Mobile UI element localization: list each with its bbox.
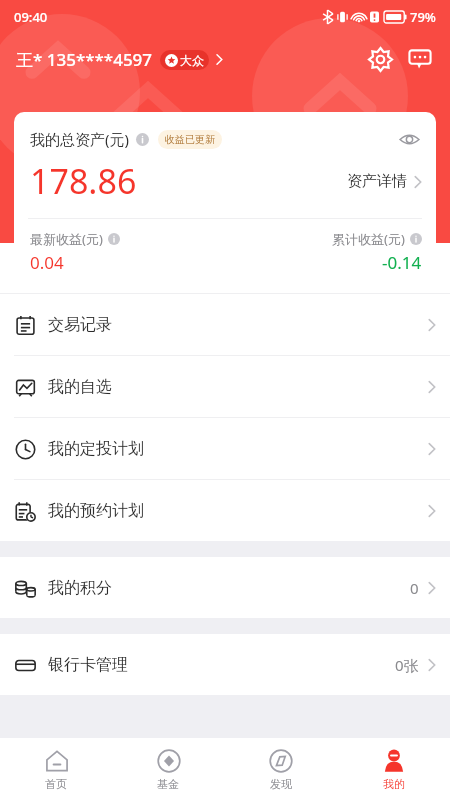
staticText: 收益已更新 (165, 133, 215, 146)
staticText: 交易记录 (48, 315, 112, 335)
button[interactable]: Settings (362, 42, 398, 76)
staticText: 基金 (157, 777, 179, 791)
staticText: 我的 (383, 777, 405, 791)
staticText: 首页 (45, 777, 67, 791)
button[interactable]: 王* 135****4597 (16, 48, 223, 71)
staticText: 我的总资产(元) (30, 129, 130, 149)
staticText: 王* 135****4597 (16, 48, 153, 71)
button[interactable]: 交易记录 (0, 294, 450, 355)
button[interactable]: Messages (402, 42, 438, 76)
staticText: 我的预约计划 (48, 501, 144, 521)
staticText: 最新收益(元) (30, 230, 103, 248)
staticText: 资产详情 (347, 172, 407, 191)
staticText: 我的积分 (48, 578, 112, 598)
staticText: 发现 (270, 777, 292, 791)
staticText: 0张 (395, 655, 419, 675)
button[interactable]: 我的自选 (0, 356, 450, 417)
button[interactable]: 我的积分 (0, 557, 450, 618)
staticText: -0.14 (382, 251, 422, 274)
staticText: 累计收益(元) (332, 230, 405, 248)
staticText: 大众 (180, 53, 204, 68)
button[interactable]: 基金 (112, 738, 224, 800)
staticText: 我的自选 (48, 377, 112, 397)
button[interactable]: 我的定投计划 (0, 418, 450, 479)
button[interactable]: Toggle visibility (396, 126, 422, 152)
staticText: 09:40 (14, 8, 48, 26)
button[interactable]: 您有确认中交易5笔正在进行中 (0, 243, 450, 293)
staticText: 79% (410, 8, 436, 26)
button[interactable]: 银行卡管理 (0, 634, 450, 695)
button[interactable]: 我的 (337, 738, 450, 800)
button[interactable]: 资产详情 (347, 172, 422, 191)
staticText: 178.86 (30, 158, 137, 204)
button[interactable]: 我的预约计划 (0, 480, 450, 541)
button[interactable]: 发现 (224, 738, 337, 800)
staticText: 银行卡管理 (48, 655, 128, 675)
staticText: 0.04 (30, 251, 64, 274)
staticText: 0 (410, 578, 419, 598)
staticText: 我的定投计划 (48, 439, 144, 459)
button[interactable]: 首页 (0, 738, 112, 800)
